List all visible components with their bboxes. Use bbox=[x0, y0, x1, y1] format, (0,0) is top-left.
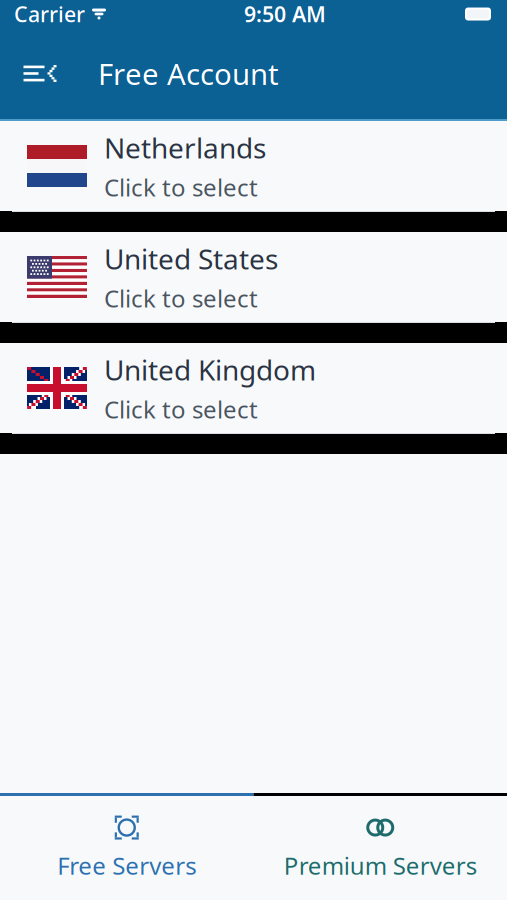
staticText: Click to select bbox=[104, 393, 258, 425]
staticText: 9:50 AM bbox=[244, 0, 326, 28]
staticText: Netherlands bbox=[104, 129, 266, 166]
staticText: Carrier bbox=[14, 0, 85, 28]
staticText: Premium Servers bbox=[284, 850, 477, 881]
staticText: Free Account bbox=[98, 54, 279, 93]
button[interactable]: Premium Servers bbox=[253, 801, 507, 895]
staticText: United Kingdom bbox=[104, 351, 316, 388]
button[interactable]: Menu bbox=[12, 49, 68, 97]
staticText: Click to select bbox=[104, 171, 258, 203]
staticText: United States bbox=[104, 240, 278, 277]
button[interactable]: Free Servers bbox=[0, 801, 253, 895]
staticText: Free Servers bbox=[57, 850, 196, 881]
button[interactable]: United Kingdom bbox=[0, 343, 507, 454]
button[interactable]: United States bbox=[0, 232, 507, 343]
button[interactable]: Netherlands bbox=[0, 121, 507, 232]
staticText: Click to select bbox=[104, 282, 258, 314]
